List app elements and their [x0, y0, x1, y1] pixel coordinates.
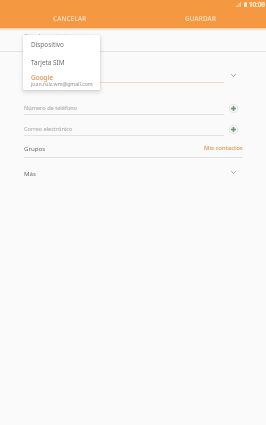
staticText: Correo electrónico	[24, 125, 73, 133]
staticText: Grupos	[24, 144, 46, 152]
button[interactable]: Add phone number	[228, 103, 239, 114]
staticText: Dispositivo	[31, 40, 64, 49]
staticText: GUARDAR	[185, 14, 217, 22]
button[interactable]: CANCELAR	[3, 9, 136, 26]
staticText: Más	[24, 169, 36, 177]
button[interactable]: Más	[0, 166, 266, 180]
staticText: 10:00	[249, 0, 265, 8]
staticText: Guardar contacto en	[24, 32, 79, 40]
button[interactable]: Tarjeta SIM	[23, 57, 100, 71]
button[interactable]: Correo electrónico	[0, 123, 266, 137]
staticText: Google	[31, 73, 53, 82]
staticText: Tarjeta SIM	[31, 58, 65, 67]
button[interactable]: GUARDAR	[134, 9, 266, 26]
staticText: Mis contactos	[204, 144, 243, 152]
button[interactable]: Expand account selector	[227, 70, 239, 80]
button[interactable]: Grupos	[0, 141, 266, 155]
staticText: CANCELAR	[53, 14, 87, 22]
staticText: Número de teléfono	[24, 104, 78, 112]
staticText: juan.ruiz.wm@gmail.com	[31, 80, 93, 87]
button[interactable]: Add email address	[228, 124, 239, 135]
button[interactable]: Dispositivo	[23, 39, 100, 53]
button[interactable]: Google	[23, 73, 100, 90]
button[interactable]: Número de teléfono	[0, 102, 266, 116]
